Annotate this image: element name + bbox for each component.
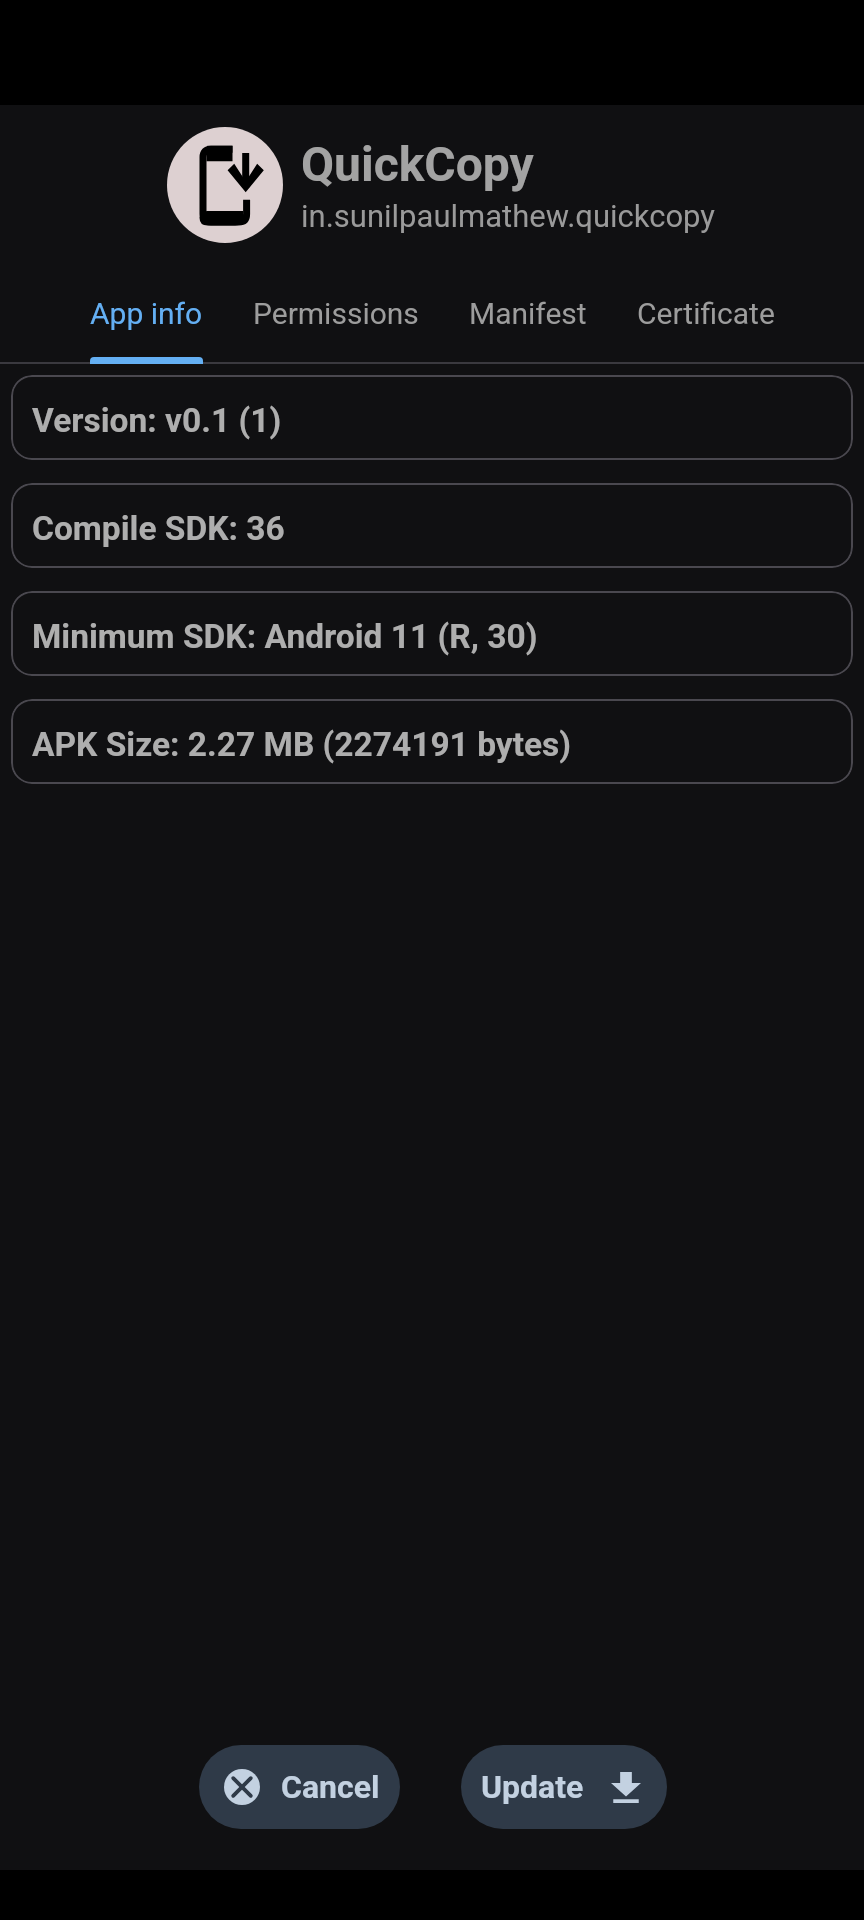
button[interactable]: Version: v0.1 (1) — [11, 375, 853, 460]
button[interactable]: APK Size: 2.27 MB (2274191 bytes) — [11, 699, 853, 784]
staticText: App info — [90, 296, 203, 331]
button[interactable]: Cancel — [199, 1745, 400, 1829]
staticText: Cancel — [281, 1768, 380, 1806]
button[interactable]: Update — [461, 1745, 667, 1829]
button[interactable]: Manifest — [444, 243, 612, 362]
staticText: in.sunilpaulmathew.quickcopy — [301, 198, 716, 234]
staticText: Update — [481, 1768, 584, 1806]
staticText: Manifest — [469, 296, 587, 331]
staticText: QuickCopy — [301, 136, 534, 192]
staticText: APK Size: 2.27 MB (2274191 bytes) — [32, 725, 572, 764]
staticText: Minimum SDK: Android 11 (R, 30) — [32, 617, 538, 656]
button[interactable]: Compile SDK: 36 — [11, 483, 853, 568]
other: QuickCopy app icon — [167, 127, 283, 243]
staticText: Permissions — [253, 296, 419, 331]
button[interactable]: App info — [65, 243, 228, 362]
button[interactable]: Minimum SDK: Android 11 (R, 30) — [11, 591, 853, 676]
staticText: Compile SDK: 36 — [32, 509, 285, 548]
button[interactable]: Certificate — [612, 243, 800, 362]
staticText: Certificate — [637, 296, 775, 331]
button[interactable]: Permissions — [228, 243, 444, 362]
staticText: Version: v0.1 (1) — [32, 401, 282, 440]
